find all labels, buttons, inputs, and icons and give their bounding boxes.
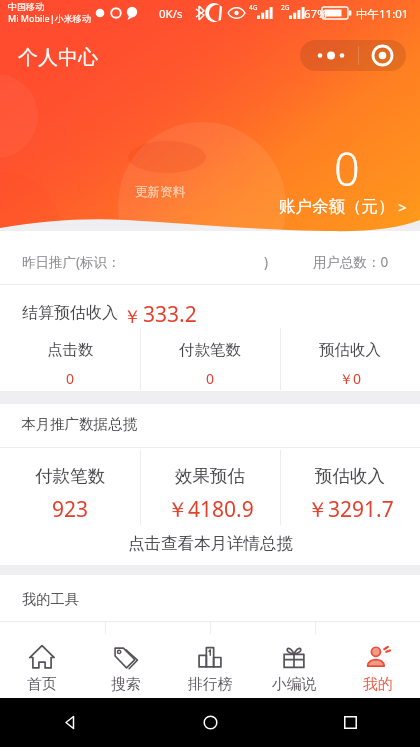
button[interactable] — [141, 328, 280, 390]
staticText: 昨日推广(标识： — [22, 253, 121, 271]
staticText: 个人中心 — [18, 45, 98, 70]
staticText: 中午11:01 — [356, 6, 409, 22]
staticText: 效果预估 — [175, 465, 245, 487]
staticText: 0 — [206, 369, 215, 388]
staticText: 4G — [249, 3, 258, 12]
staticText: 0K/s — [159, 6, 183, 22]
staticText: 首页 — [27, 675, 57, 694]
button[interactable]: 搜索 — [84, 634, 168, 698]
button[interactable] — [281, 450, 420, 525]
button[interactable] — [106, 622, 210, 682]
staticText: ￥4180.9 — [167, 495, 254, 524]
staticText: 点击数 — [47, 340, 94, 360]
button[interactable]: 点击查看本月详情总揽 — [0, 526, 420, 560]
staticText: 用户总数：0 — [313, 253, 389, 271]
staticText: 小编说 — [272, 675, 317, 694]
staticText: 我的工具 — [22, 590, 79, 608]
other: Recents — [344, 716, 357, 729]
staticText: 2G — [281, 3, 290, 12]
staticText: 预估收入 — [319, 340, 381, 360]
staticText: 预估收入 — [315, 465, 385, 487]
staticText: 333.2 — [143, 300, 197, 329]
staticText: 本月推广数据总揽 — [21, 415, 137, 433]
button[interactable] — [0, 622, 105, 682]
button[interactable]: 首页 — [0, 634, 84, 698]
staticText: 搜索 — [111, 675, 141, 694]
staticText: 点击查看本月详情总揽 — [128, 533, 293, 554]
staticText: ￥0 — [339, 369, 362, 388]
button[interactable] — [141, 450, 280, 525]
staticText: 账户余额（元） — [279, 196, 395, 217]
button[interactable]: More options — [300, 40, 406, 71]
button[interactable] — [0, 450, 140, 525]
staticText: 更新资料 — [135, 184, 185, 200]
staticText: 中国移动 — [8, 1, 44, 12]
button[interactable] — [281, 328, 420, 390]
staticText: 0 — [66, 369, 75, 388]
staticText: 67% — [304, 6, 327, 22]
button[interactable]: 0 — [0, 132, 420, 218]
button[interactable] — [316, 622, 420, 682]
staticText: 0 — [334, 138, 360, 199]
other: Back — [63, 715, 78, 730]
button[interactable] — [211, 622, 315, 682]
staticText: ) — [264, 253, 269, 271]
other: Home — [203, 715, 218, 730]
button[interactable] — [0, 328, 140, 390]
staticText: Mi Mobile|小米移动 — [8, 12, 91, 24]
staticText: 结算预估收入 — [22, 303, 118, 323]
staticText: 排行榜 — [188, 675, 233, 694]
staticText: > — [398, 197, 407, 217]
button[interactable]: 小编说 — [252, 634, 336, 698]
staticText: 付款笔数 — [179, 340, 241, 360]
staticText: ￥3291.7 — [307, 495, 394, 524]
button[interactable]: 排行榜 — [168, 634, 252, 698]
button[interactable]: 我的 — [336, 634, 420, 698]
staticText: 923 — [52, 495, 89, 524]
staticText: ￥ — [123, 306, 141, 329]
staticText: 付款笔数 — [35, 465, 105, 487]
staticText: 我的 — [363, 675, 393, 694]
